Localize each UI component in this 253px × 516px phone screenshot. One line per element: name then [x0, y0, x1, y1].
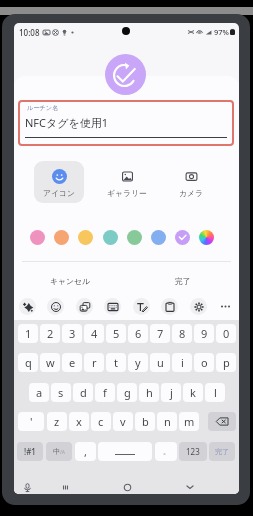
button[interactable]: i [172, 353, 192, 372]
button[interactable]: Colour 4 [103, 230, 118, 245]
staticText: p [223, 355, 230, 370]
staticText: ギャラリー [107, 188, 147, 198]
button[interactable]: Clipboard keyboard [104, 298, 121, 315]
button[interactable]: n [157, 412, 177, 431]
button[interactable]: Clipboard [161, 298, 178, 315]
button[interactable]: キャンセル [14, 268, 126, 293]
button[interactable]: ' [18, 412, 44, 431]
button[interactable]: l [205, 383, 225, 402]
staticText: 4 [91, 326, 98, 341]
button[interactable]: v [113, 412, 133, 431]
button[interactable]: More options [217, 298, 234, 315]
staticText: k [190, 385, 196, 400]
button[interactable]: !#1 [17, 442, 43, 461]
button[interactable]: c [91, 412, 111, 431]
button[interactable]: k [183, 383, 203, 402]
staticText: /A [60, 449, 66, 456]
staticText: a [36, 385, 43, 400]
button[interactable]: a [29, 383, 49, 402]
staticText: 10:08 [19, 27, 40, 38]
button[interactable]: 3 [62, 324, 82, 343]
staticText: ルーチン名 [27, 104, 59, 112]
button[interactable]: Colour 2 [54, 230, 69, 245]
button[interactable]: q [18, 353, 38, 372]
button[interactable]: Colour 5 [127, 230, 142, 245]
button[interactable]: Custom colour [199, 230, 214, 245]
staticText: u [157, 355, 164, 370]
staticText: !#1 [24, 446, 36, 457]
button[interactable]: AI suggestions [19, 298, 36, 315]
button[interactable]: , [75, 442, 96, 461]
button[interactable]: ギャラリー [102, 161, 152, 203]
button[interactable]: Selected colour [175, 230, 190, 245]
staticText: l [214, 385, 217, 400]
button[interactable]: g [117, 383, 137, 402]
button[interactable]: z [47, 412, 67, 431]
button[interactable]: 0 [216, 324, 236, 343]
button[interactable]: b [135, 412, 155, 431]
button[interactable]: u [150, 353, 170, 372]
button[interactable]: 6 [128, 324, 148, 343]
button[interactable]: d [73, 383, 93, 402]
button[interactable]: h [139, 383, 159, 402]
button[interactable]: Recent apps [57, 479, 73, 494]
button[interactable]: 完了 [126, 268, 239, 293]
button[interactable]: t [106, 353, 126, 372]
staticText: 8 [179, 326, 186, 341]
button[interactable]: Keyboard settings [190, 298, 207, 315]
button[interactable]: y [128, 353, 148, 372]
staticText: 中 [53, 447, 60, 456]
staticText: r [92, 355, 97, 370]
button[interactable]: p [216, 353, 236, 372]
button[interactable]: f [95, 383, 115, 402]
button[interactable]: Emoji [47, 298, 64, 315]
button[interactable]: s [51, 383, 71, 402]
button[interactable]: 9 [194, 324, 214, 343]
button[interactable]: e [62, 353, 82, 372]
button[interactable]: 4 [84, 324, 104, 343]
button[interactable]: x [69, 412, 89, 431]
button[interactable]: r [84, 353, 104, 372]
staticText: f [103, 385, 107, 400]
button[interactable]: o [194, 353, 214, 372]
staticText: n [164, 414, 171, 429]
staticText: 2 [47, 326, 54, 341]
staticText: y [135, 355, 141, 370]
staticText: d [80, 385, 87, 400]
button[interactable]: Colour 1 [30, 230, 45, 245]
button[interactable]: w [40, 353, 60, 372]
staticText: x [76, 414, 82, 429]
button[interactable]: 123 [179, 442, 207, 461]
button[interactable]: j [161, 383, 181, 402]
button[interactable]: 2 [40, 324, 60, 343]
button[interactable]: Home [119, 479, 135, 494]
button[interactable]: Colour 6 [151, 230, 166, 245]
button[interactable]: 完了 [209, 442, 235, 461]
button[interactable]: Voice input [19, 479, 35, 494]
button[interactable]: 。 [155, 442, 177, 461]
staticText: ' [30, 414, 33, 429]
button[interactable]: Space [98, 442, 152, 461]
staticText: NFCタグを使用1 [25, 115, 109, 130]
button[interactable]: Colour 3 [78, 230, 93, 245]
staticText: 123 [186, 446, 200, 457]
staticText: カメラ [179, 188, 203, 198]
button[interactable]: Hide keyboard [182, 479, 198, 494]
button[interactable]: Handwriting [133, 298, 150, 315]
staticText: 1 [25, 326, 32, 341]
button[interactable]: Stickers [76, 298, 93, 315]
button[interactable]: 中 [46, 442, 72, 461]
staticText: e [69, 355, 76, 370]
button[interactable]: Backspace [208, 412, 236, 431]
button[interactable]: 5 [106, 324, 126, 343]
staticText: アイコン [43, 188, 75, 198]
button[interactable]: 7 [150, 324, 170, 343]
button[interactable]: カメラ [166, 161, 216, 203]
staticText: 0 [223, 326, 230, 341]
staticText: 完了 [215, 447, 229, 456]
staticText: キャンセル [50, 276, 90, 286]
button[interactable]: アイコン [34, 161, 84, 203]
button[interactable]: 8 [172, 324, 192, 343]
button[interactable]: 1 [18, 324, 38, 343]
button[interactable]: m [179, 412, 199, 431]
